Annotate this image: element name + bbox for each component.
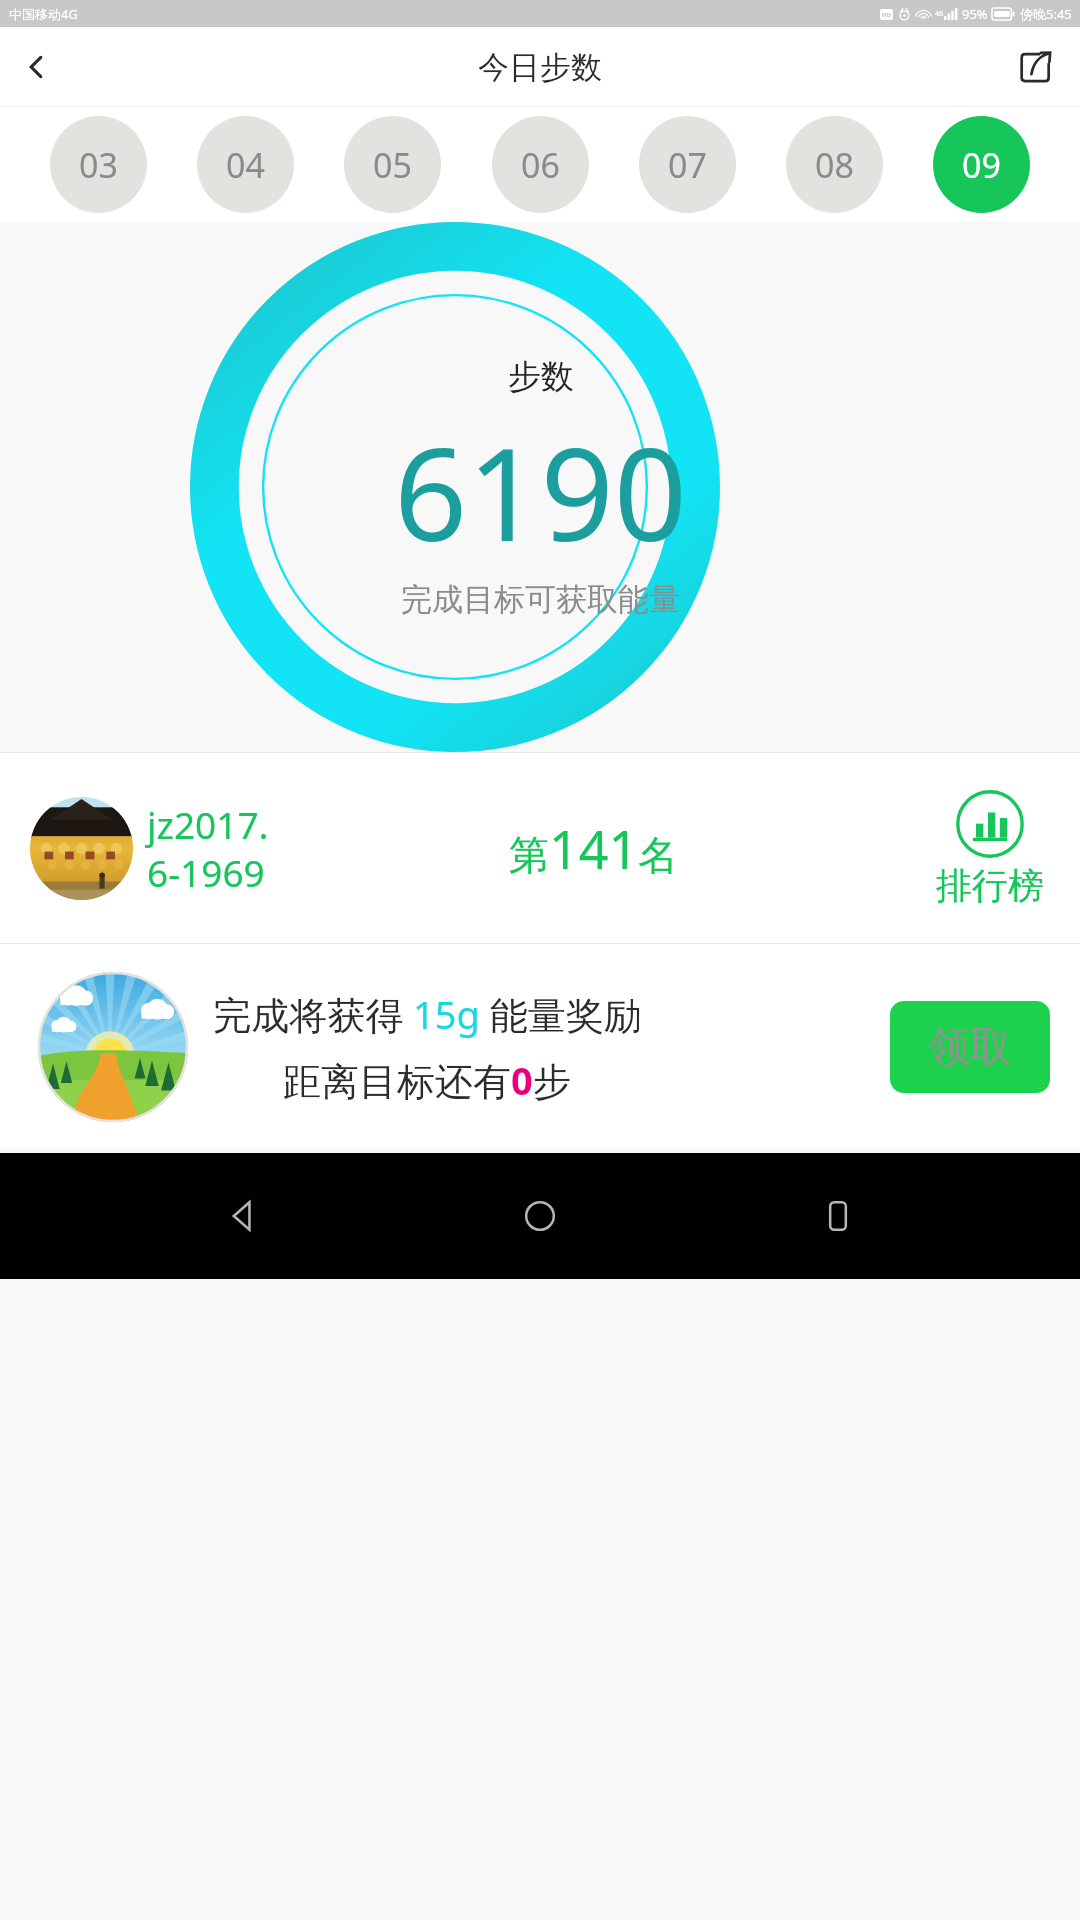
staticText: 傍晚5:45	[1020, 5, 1072, 23]
staticText: 中国移动4G	[9, 5, 78, 23]
staticText: 08	[815, 142, 854, 188]
button[interactable]: 领取	[890, 1001, 1050, 1093]
staticText: 06	[521, 142, 560, 188]
button[interactable]: 03	[50, 116, 147, 213]
staticText: 07	[668, 142, 707, 188]
button[interactable]: Back	[188, 1161, 298, 1271]
staticText: 03	[79, 142, 118, 188]
staticText: 6190	[394, 404, 687, 578]
button[interactable]: Share	[1004, 36, 1066, 98]
button[interactable]: 07	[639, 116, 736, 213]
staticText: 09	[962, 142, 1001, 188]
button[interactable]: 排行榜	[900, 789, 1080, 908]
staticText: 第141名	[509, 813, 679, 884]
button[interactable]: 04	[197, 116, 294, 213]
staticText: 完成目标可获取能量	[401, 580, 680, 619]
staticText: HD	[882, 11, 891, 19]
staticText: 距离目标还有0步	[283, 1054, 571, 1106]
staticText: 排行榜	[936, 863, 1044, 908]
button[interactable]: Recents	[783, 1161, 893, 1271]
button[interactable]: 05	[344, 116, 441, 213]
button[interactable]: Home	[485, 1161, 595, 1271]
staticText: jz2017.6-1969	[147, 799, 287, 898]
staticText: 领取	[928, 1021, 1012, 1074]
button[interactable]: 09	[933, 116, 1030, 213]
staticText: 今日步数	[478, 48, 602, 87]
staticText: 05	[373, 142, 412, 188]
button[interactable]: Back	[0, 31, 72, 103]
button[interactable]: 08	[786, 116, 883, 213]
staticText: 46	[935, 9, 944, 19]
staticText: 完成将获得 15g 能量奖励	[213, 988, 642, 1040]
staticText: 95%	[962, 5, 988, 23]
staticText: 04	[226, 142, 265, 188]
staticText: 步数	[508, 356, 574, 398]
button[interactable]: 06	[492, 116, 589, 213]
button[interactable]: jz2017.6-1969	[0, 753, 1080, 943]
